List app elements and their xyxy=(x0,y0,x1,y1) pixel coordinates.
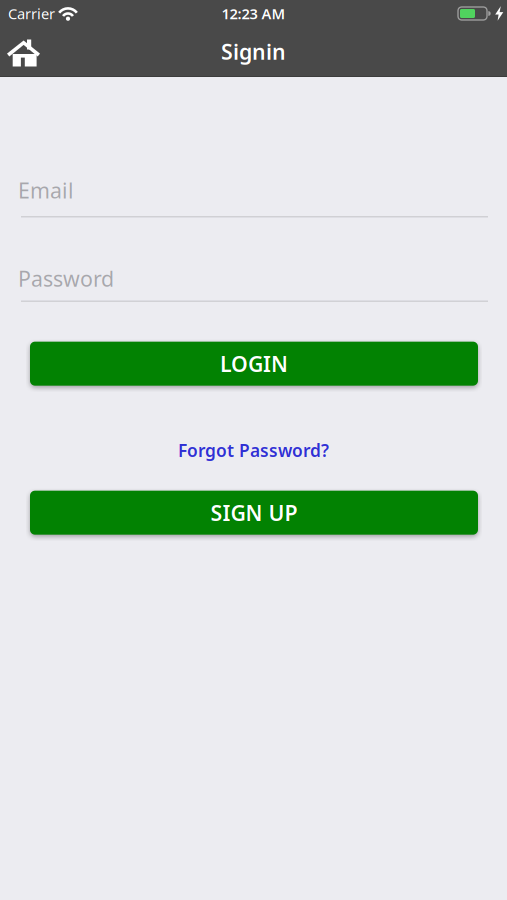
button[interactable]: Home xyxy=(0,27,40,76)
button[interactable]: SIGN UP xyxy=(30,491,478,535)
staticText: SIGN UP xyxy=(210,498,297,527)
staticText: Password xyxy=(18,264,114,293)
button[interactable]: LOGIN xyxy=(30,342,478,386)
staticText: Carrier xyxy=(8,4,55,23)
staticText: Email xyxy=(18,176,74,204)
button[interactable]: Forgot Password? xyxy=(178,439,329,462)
staticText: Signin xyxy=(221,37,286,66)
staticText: LOGIN xyxy=(220,349,288,378)
staticText: 12:23 AM xyxy=(221,4,285,23)
staticText: Forgot Password? xyxy=(178,439,329,462)
